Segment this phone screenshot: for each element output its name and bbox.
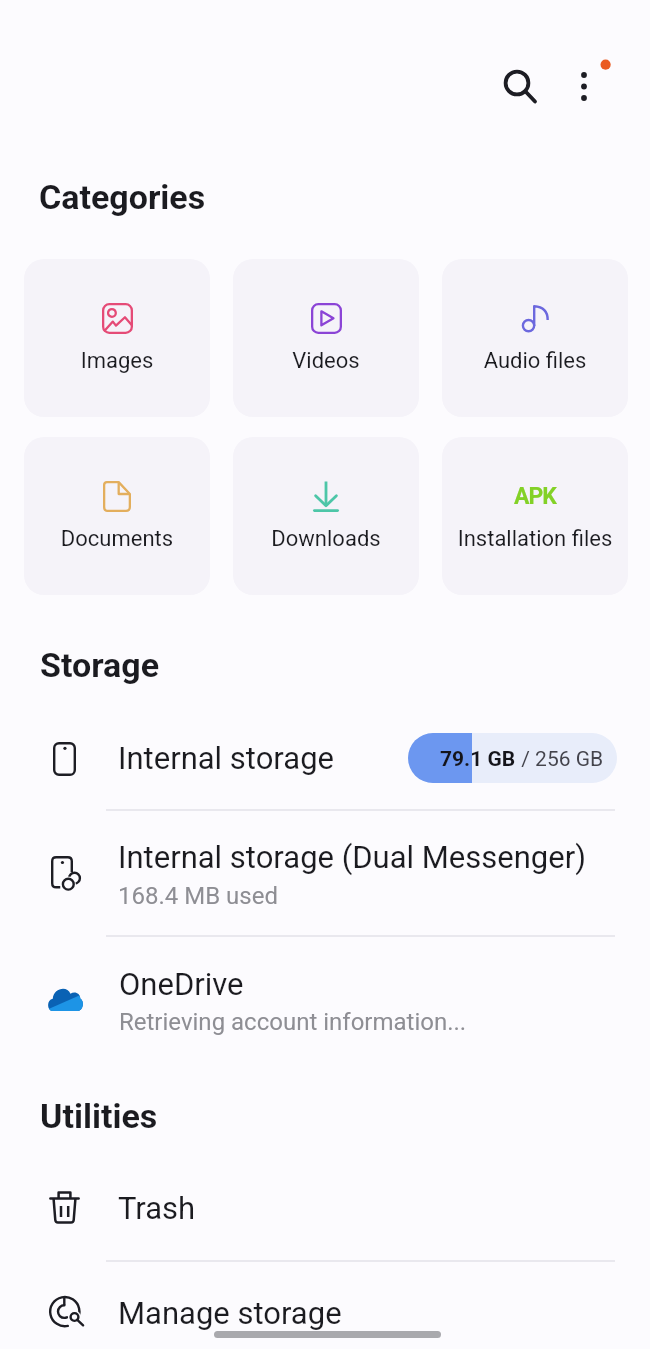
staticText: Categories <box>39 177 206 217</box>
staticText: Images <box>24 348 210 374</box>
staticText: Videos <box>233 348 419 374</box>
staticText: OneDrive <box>119 966 244 1002</box>
staticText: Installation files <box>442 526 628 552</box>
staticText: / 256 GB <box>516 747 604 772</box>
button[interactable]: Internal storage <box>0 709 650 809</box>
button[interactable]: Documents <box>24 437 210 595</box>
button[interactable]: Internal storage (Dual Messenger) <box>0 810 650 935</box>
staticText: Internal storage <box>118 740 334 776</box>
staticText: Utilities <box>40 1096 158 1136</box>
staticText: Downloads <box>233 526 419 552</box>
button[interactable]: OneDrive <box>0 936 650 1061</box>
staticText: Storage <box>40 645 160 685</box>
staticText: 168.4 MB used <box>118 882 278 910</box>
button[interactable]: Videos <box>233 259 419 417</box>
staticText: 79.1 GB <box>440 747 516 772</box>
staticText: Manage storage <box>118 1295 342 1331</box>
button[interactable]: More options <box>550 49 618 117</box>
staticText: Documents <box>24 526 210 552</box>
staticText: Retrieving account information... <box>119 1008 467 1036</box>
button[interactable]: Downloads <box>233 437 419 595</box>
button[interactable]: Search <box>483 49 551 117</box>
staticText: Internal storage (Dual Messenger) <box>118 839 586 875</box>
button[interactable]: Images <box>24 259 210 417</box>
button[interactable]: Trash <box>0 1160 650 1260</box>
button[interactable]: Audio files <box>442 259 628 417</box>
staticText: APK <box>514 483 556 510</box>
staticText: Audio files <box>442 348 628 374</box>
staticText: Trash <box>118 1190 196 1226</box>
button[interactable]: Manage storage <box>0 1261 650 1349</box>
button[interactable]: APK <box>442 437 628 595</box>
